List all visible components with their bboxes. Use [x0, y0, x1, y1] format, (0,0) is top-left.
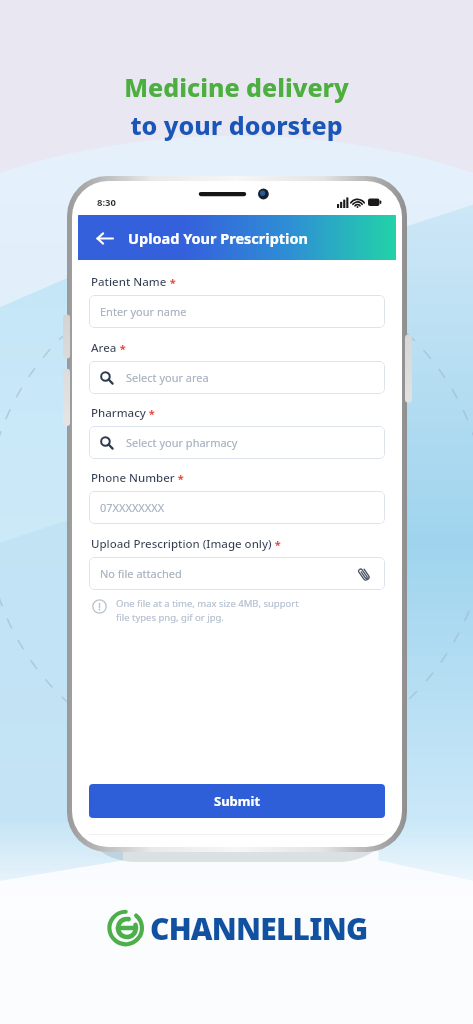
- staticText: No file attached: [100, 566, 354, 581]
- staticText: Pharmacy: [91, 405, 146, 421]
- staticText: Upload Your Prescription: [128, 228, 308, 248]
- staticText: *: [175, 471, 184, 486]
- staticText: to your doorstep: [130, 108, 343, 142]
- staticText: Submit: [214, 792, 261, 810]
- staticText: 8:30: [97, 196, 116, 209]
- button[interactable]: Select your pharmacy: [89, 426, 385, 459]
- staticText: Enter your name: [100, 304, 374, 319]
- staticText: Medicine delivery: [124, 70, 349, 104]
- button[interactable]: 07XXXXXXXX: [89, 491, 385, 524]
- staticText: Phone Number: [91, 470, 175, 486]
- button[interactable]: Attach file: [354, 564, 374, 584]
- staticText: *: [167, 275, 176, 290]
- staticText: Patient Name: [91, 274, 167, 290]
- staticText: Upload Prescription (Image only): [91, 536, 272, 552]
- staticText: *: [272, 537, 281, 552]
- staticText: *: [146, 406, 155, 421]
- button[interactable]: Select your area: [89, 361, 385, 394]
- button[interactable]: Enter your name: [89, 295, 385, 328]
- button[interactable]: Submit: [89, 784, 385, 818]
- button[interactable]: No file attached: [89, 557, 385, 590]
- staticText: CHANNELLING: [150, 908, 368, 949]
- staticText: 07XXXXXXXX: [100, 500, 374, 515]
- staticText: Select your area: [126, 370, 374, 385]
- staticText: Select your pharmacy: [126, 435, 374, 450]
- staticText: Area: [91, 340, 117, 356]
- button[interactable]: Back: [88, 222, 120, 254]
- staticText: *: [117, 341, 126, 356]
- staticText: One file at a time, max size 4MB, suppor…: [116, 597, 299, 624]
